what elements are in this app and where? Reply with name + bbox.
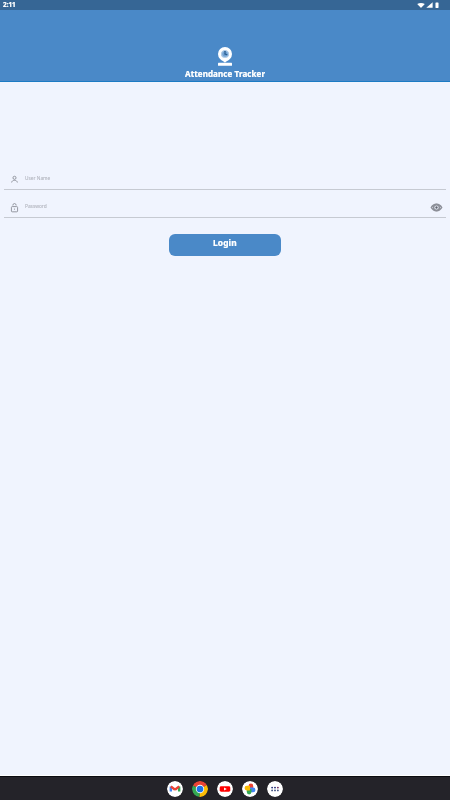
other: Attendance Tracker logo [218,47,232,66]
button[interactable]: Login [169,234,281,256]
button[interactable]: Gmail [167,781,183,797]
staticText: User Name [25,175,51,182]
button[interactable]: Photos [242,781,258,797]
button[interactable]: YouTube [217,781,233,797]
staticText: Password [25,203,47,210]
button[interactable]: Chrome [192,781,208,797]
button[interactable]: Show password [429,201,443,215]
staticText: 2:11 [3,0,16,9]
button[interactable]: User Name [4,170,446,190]
button[interactable]: Password [4,198,446,218]
staticText: Login [213,237,237,248]
button[interactable]: All apps [267,781,283,797]
staticText: Attendance Tracker [185,68,266,79]
